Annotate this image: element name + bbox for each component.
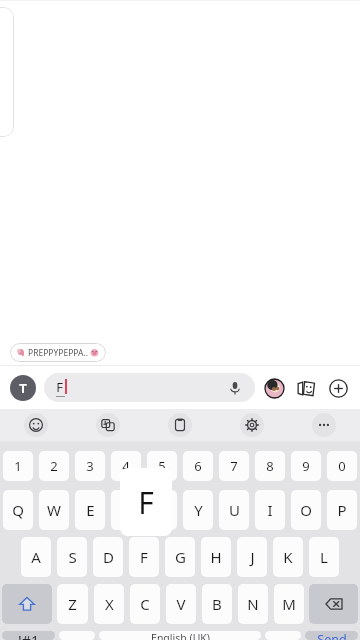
staticText: N [247, 594, 259, 614]
button[interactable]: T [147, 490, 177, 530]
button[interactable]: D [93, 537, 123, 577]
button[interactable]: M [274, 584, 304, 624]
button[interactable]: Stickers [294, 376, 318, 400]
staticText: M [282, 594, 296, 614]
staticText: E [86, 500, 95, 520]
button[interactable]: S [57, 537, 87, 577]
button[interactable]: 1 [3, 451, 33, 481]
staticText: Q [12, 500, 24, 520]
button[interactable]: Send [305, 631, 358, 640]
staticText: S [68, 547, 77, 567]
button[interactable]: N [238, 584, 268, 624]
button[interactable]: Settings [216, 409, 288, 441]
staticText: X [105, 594, 114, 614]
staticText: I [267, 500, 273, 520]
button[interactable]: 9 [291, 451, 321, 481]
staticText: Y [194, 500, 203, 520]
button[interactable]: H [201, 537, 231, 577]
button[interactable]: G [165, 537, 195, 577]
button[interactable]: J [237, 537, 267, 577]
staticText: H [210, 547, 222, 567]
staticText: Z [68, 594, 77, 614]
button[interactable]: A [21, 537, 51, 577]
button[interactable]: B [202, 584, 232, 624]
button[interactable]: Add [326, 376, 350, 400]
button[interactable]: . [265, 631, 301, 640]
staticText: O [300, 500, 312, 520]
button[interactable]: 3 [75, 451, 105, 481]
button[interactable]: English (UK) [99, 631, 261, 640]
button[interactable]: U [219, 490, 249, 530]
button[interactable]: 6 [183, 451, 213, 481]
button[interactable]: Avatar sticker [262, 376, 286, 400]
button[interactable]: O [291, 490, 321, 530]
staticText: V [176, 594, 186, 614]
button[interactable]: 0 [327, 451, 357, 481]
staticText: B [212, 594, 222, 614]
button[interactable]: P [327, 490, 357, 530]
button[interactable]: More options [288, 409, 360, 441]
staticText: 7 [230, 457, 238, 475]
staticText: L [320, 547, 328, 567]
button[interactable]: X [94, 584, 124, 624]
staticText: 4 [122, 457, 130, 475]
button[interactable]: Shift [2, 584, 52, 624]
button[interactable]: 4 [111, 451, 141, 481]
staticText: 3 [86, 457, 94, 475]
staticText: F [140, 547, 148, 567]
button[interactable]: Y [183, 490, 213, 530]
staticText: K [283, 547, 293, 567]
button[interactable]: 5 [147, 451, 177, 481]
button[interactable]: 7 [219, 451, 249, 481]
button[interactable]: W [39, 490, 69, 530]
staticText: 2 [50, 457, 58, 475]
button[interactable]: PREPPYPEPPA.. [10, 343, 106, 362]
button[interactable]: Text mode [10, 375, 36, 401]
staticText: W [47, 500, 61, 520]
button[interactable]: Translate [72, 409, 144, 441]
staticText: C [140, 594, 150, 614]
button[interactable]: Backspace [309, 584, 358, 624]
staticText: 8 [266, 457, 274, 475]
button[interactable]: E [75, 490, 105, 530]
button[interactable]: 8 [255, 451, 285, 481]
button[interactable]: 2 [39, 451, 69, 481]
staticText: PREPPYPEPPA.. [28, 347, 88, 359]
button[interactable]: C [130, 584, 160, 624]
staticText: !#1 [18, 631, 39, 640]
button[interactable]: F [44, 373, 255, 402]
staticText: 9 [302, 457, 310, 475]
staticText: Send [317, 631, 347, 640]
button[interactable]: I [255, 490, 285, 530]
button[interactable]: Voice input [223, 376, 247, 400]
staticText: 6 [194, 457, 202, 475]
staticText: J [250, 547, 255, 567]
button[interactable]: L [309, 537, 339, 577]
staticText: 0 [338, 457, 346, 475]
staticText: 1 [14, 457, 22, 475]
staticText: D [103, 547, 114, 567]
button[interactable]: , [59, 631, 95, 640]
button[interactable]: Emoji [0, 409, 72, 441]
button[interactable]: V [166, 584, 196, 624]
staticText: 5 [158, 457, 166, 475]
button[interactable]: Q [3, 490, 33, 530]
staticText: English (UK) [151, 631, 210, 640]
button[interactable]: Z [57, 584, 88, 624]
button[interactable]: !#1 [2, 631, 55, 640]
staticText: F [138, 482, 154, 523]
staticText: A [31, 547, 41, 567]
button[interactable]: K [273, 537, 303, 577]
staticText: G [175, 547, 186, 567]
staticText: T [19, 379, 27, 397]
button[interactable]: F [129, 537, 159, 577]
button[interactable]: Clipboard [144, 409, 216, 441]
staticText: P [337, 500, 347, 520]
staticText: F [56, 378, 63, 396]
staticText: U [229, 500, 240, 520]
